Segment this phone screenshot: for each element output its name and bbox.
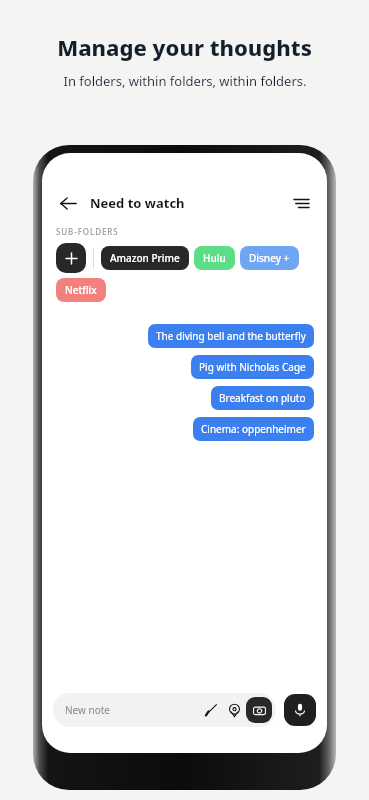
staticText: New note [65,703,110,717]
staticText: Need to watch [90,194,185,212]
button[interactable]: Sort [288,190,314,216]
button[interactable]: Disney + [240,246,299,270]
button[interactable]: Camera [246,697,272,723]
button[interactable]: Netflix [56,278,106,302]
staticText: Disney + [249,251,290,265]
staticText: The diving bell and the butterfly [156,329,306,343]
button[interactable]: Location [223,699,245,721]
button[interactable]: Back [55,190,81,216]
staticText: Pig with Nicholas Cage [199,360,306,374]
staticText: Hulu [203,251,226,265]
button[interactable]: Cinema: oppenheimer [193,417,314,441]
button[interactable]: Voice note [284,694,316,726]
button[interactable]: Pig with Nicholas Cage [191,355,314,379]
button[interactable]: Hulu [194,246,235,270]
button[interactable]: The diving bell and the butterfly [148,324,314,348]
staticText: Manage your thoughts [57,32,312,62]
button[interactable]: Draw [200,699,222,721]
staticText: SUB-FOLDERS [56,226,119,237]
staticText: Netflix [65,283,97,297]
button[interactable]: New note [53,693,276,727]
staticText: Amazon Prime [110,251,180,265]
button[interactable]: Amazon Prime [101,246,189,270]
staticText: Cinema: oppenheimer [201,422,306,436]
staticText: In folders, within folders, within folde… [63,72,307,90]
staticText: Breakfast on pluto [219,391,306,405]
button[interactable]: Add sub-folder [56,243,86,273]
button[interactable]: Breakfast on pluto [211,386,314,410]
